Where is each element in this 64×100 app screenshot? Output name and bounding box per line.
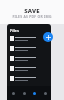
staticText: SAVE — [0, 7, 64, 15]
button[interactable]: Settings — [41, 89, 49, 97]
button[interactable]: Add — [43, 32, 53, 42]
button[interactable] — [7, 74, 51, 84]
staticText: Files — [10, 28, 19, 33]
button[interactable]: Home — [9, 89, 17, 97]
button[interactable]: Files — [30, 89, 38, 97]
button[interactable] — [7, 64, 51, 74]
button[interactable] — [7, 44, 51, 54]
button[interactable]: Search — [20, 89, 28, 97]
button[interactable] — [7, 54, 51, 64]
staticText: FILES AS PDF OR IMG — [0, 14, 64, 19]
button[interactable] — [7, 34, 51, 44]
